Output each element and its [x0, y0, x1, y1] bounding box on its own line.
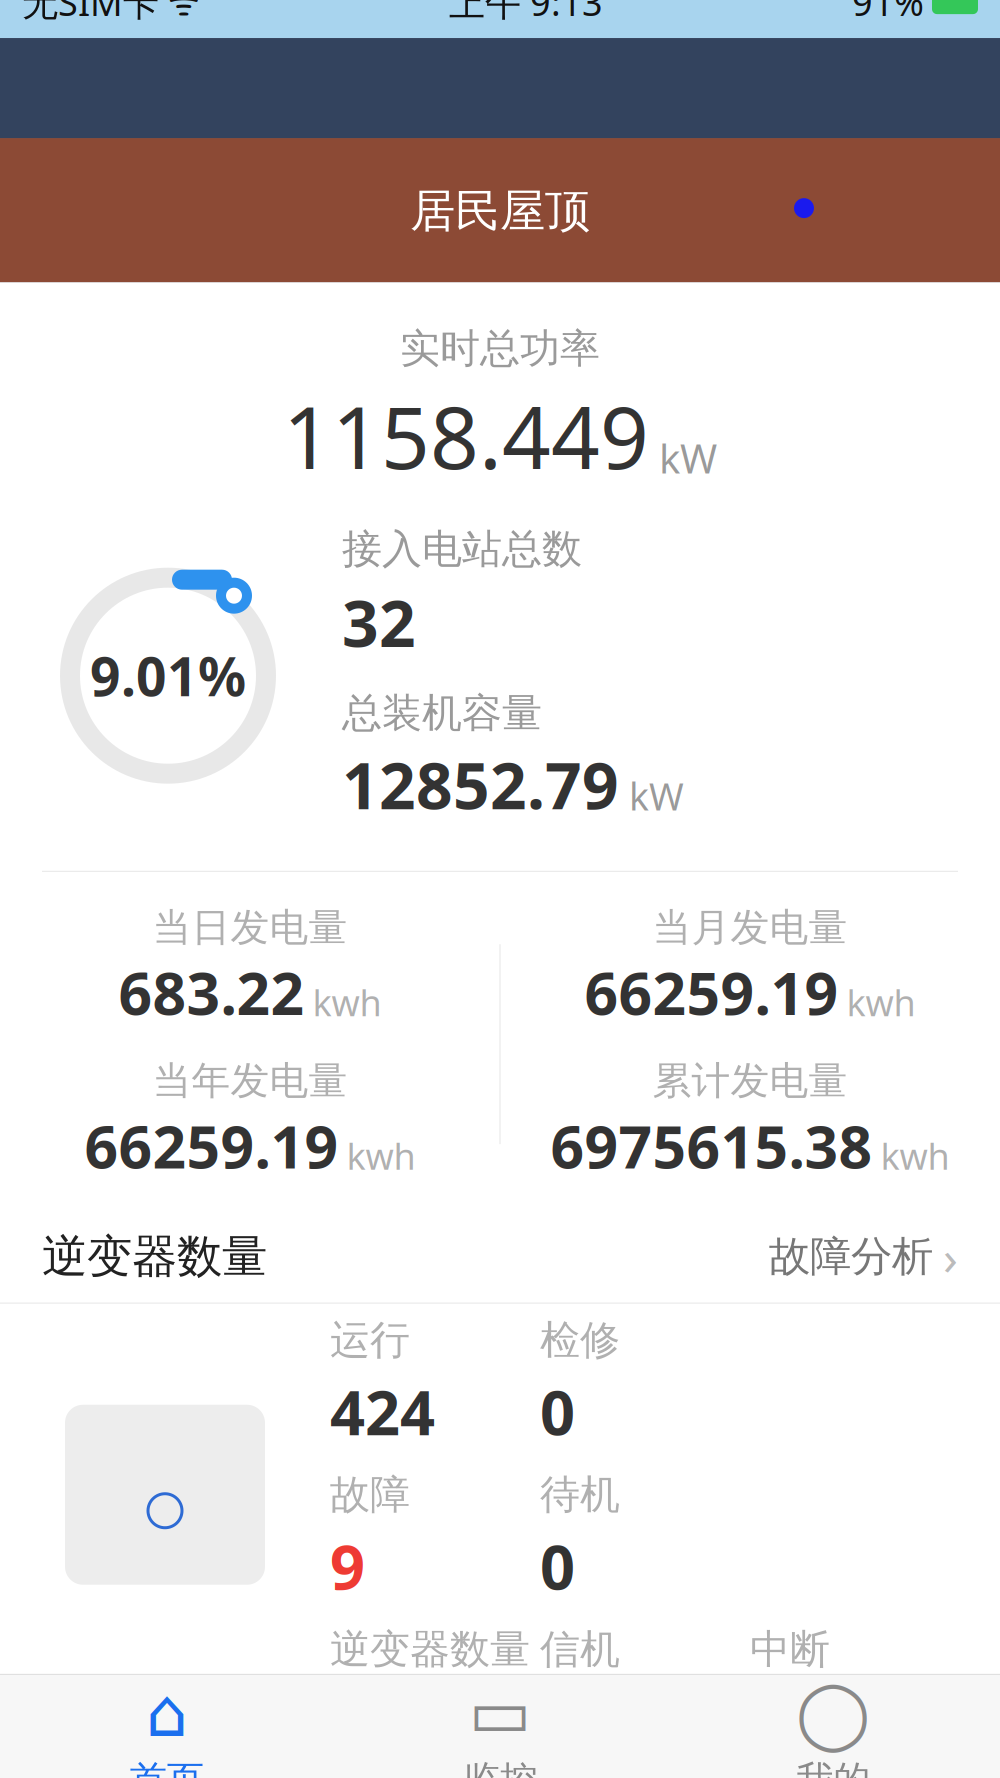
- staticText: 9: [330, 1525, 365, 1607]
- staticText: 逆变器数量: [42, 1229, 267, 1284]
- staticText: 首页: [130, 1757, 204, 1778]
- staticText: kwh: [880, 1132, 949, 1180]
- staticText: 实时总功率: [400, 324, 600, 373]
- staticText: 66259.19: [84, 1107, 338, 1185]
- staticText: 9.01%: [90, 640, 246, 711]
- staticText: 信机: [540, 1625, 620, 1674]
- staticText: ⌂: [146, 1675, 188, 1751]
- staticText: 运行: [330, 1316, 410, 1365]
- staticText: 上午 9:13: [449, 0, 603, 26]
- staticText: 6975615.38: [550, 1107, 872, 1185]
- staticText: ◯: [796, 1675, 871, 1751]
- staticText: 待机: [540, 1470, 620, 1519]
- staticText: ▭: [468, 1675, 531, 1751]
- staticText: 故障分析: [769, 1231, 933, 1282]
- staticText: 424: [330, 1371, 435, 1452]
- staticText: 累计发电量: [652, 1057, 847, 1105]
- staticText: 0: [540, 1525, 575, 1607]
- staticText: 监控: [463, 1757, 537, 1778]
- button[interactable]: ◯: [667, 1674, 1000, 1778]
- staticText: 无SIM卡: [22, 0, 159, 26]
- button[interactable]: 故障分析: [769, 1225, 958, 1288]
- staticText: 683.22: [118, 953, 304, 1031]
- staticText: kW: [629, 771, 684, 821]
- staticText: 逆变器数量: [330, 1625, 530, 1674]
- staticText: 接入电站总数: [342, 525, 582, 574]
- staticText: kwh: [846, 978, 915, 1026]
- staticText: 当年发电量: [152, 1057, 347, 1105]
- staticText: 中断: [750, 1625, 830, 1674]
- staticText: kW: [659, 431, 717, 484]
- staticText: 居民屋顶: [410, 183, 590, 239]
- staticText: ᯤ: [159, 0, 200, 25]
- staticText: 66259.19: [584, 953, 838, 1031]
- staticText: 32: [342, 580, 416, 665]
- staticText: 我的: [796, 1757, 870, 1778]
- staticText: 检修: [540, 1316, 620, 1365]
- staticText: 0: [540, 1371, 575, 1452]
- staticText: ›: [943, 1225, 958, 1288]
- staticText: 故障: [330, 1470, 410, 1519]
- staticText: 12852.79: [342, 742, 619, 827]
- staticText: kwh: [312, 978, 381, 1026]
- staticText: kwh: [346, 1132, 415, 1180]
- button[interactable]: ▭: [333, 1674, 667, 1778]
- staticText: 当日发电量: [152, 904, 347, 951]
- staticText: 总装机容量: [342, 689, 542, 738]
- staticText: 当月发电量: [652, 904, 847, 951]
- button[interactable]: ⌂: [0, 1674, 333, 1778]
- staticText: 91%: [852, 0, 924, 26]
- staticText: 1158.449: [283, 379, 649, 492]
